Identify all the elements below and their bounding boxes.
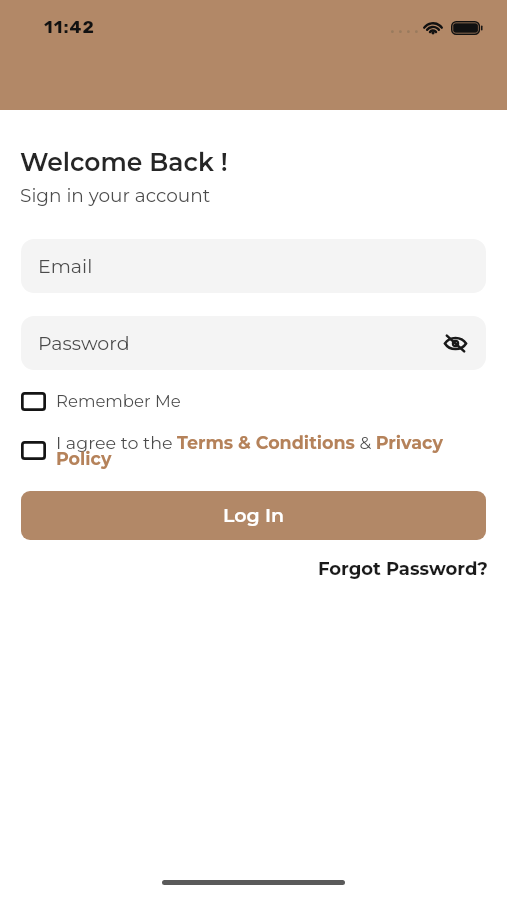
button[interactable]: Toggle password visibility bbox=[442, 330, 468, 356]
staticText: Email bbox=[38, 255, 93, 278]
staticText: Password bbox=[38, 332, 130, 355]
staticText: Welcome Back ! bbox=[20, 147, 228, 177]
button[interactable]: Forgot Password? bbox=[318, 558, 488, 580]
button[interactable]: Password bbox=[21, 316, 486, 370]
button[interactable]: I agree to the Terms & Conditions & Priv… bbox=[21, 432, 453, 470]
button[interactable]: Remember Me bbox=[21, 391, 181, 411]
staticText: Sign in your account bbox=[20, 184, 211, 207]
staticText: Log In bbox=[223, 504, 285, 527]
staticText: Remember Me bbox=[56, 391, 181, 411]
button[interactable]: Email bbox=[21, 239, 486, 293]
staticText: 11:42 bbox=[44, 17, 95, 38]
staticText: I agree to the Terms & Conditions & Priv… bbox=[56, 432, 453, 470]
button[interactable]: Log In bbox=[21, 491, 486, 540]
